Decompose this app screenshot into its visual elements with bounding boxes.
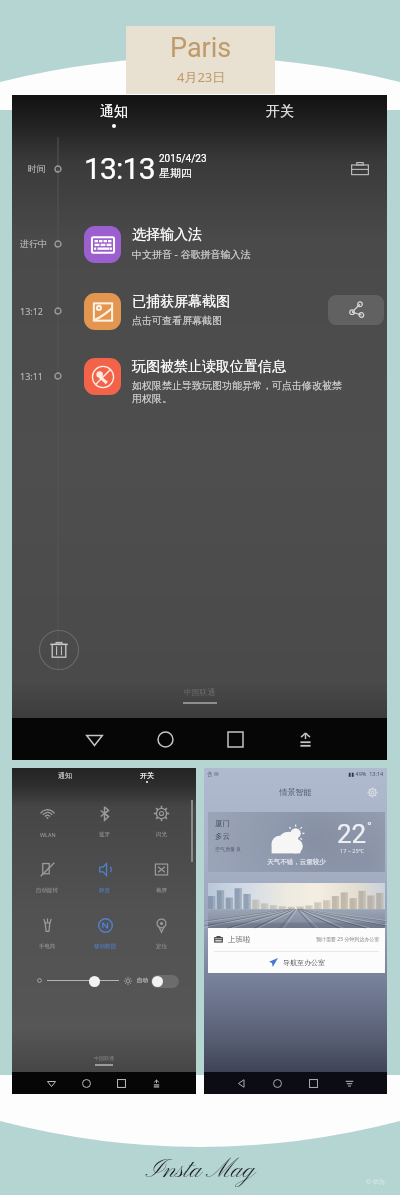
- staticText: 多云: [215, 832, 230, 841]
- button[interactable]: Menu: [331, 1072, 367, 1094]
- button[interactable]: Recents: [104, 1072, 139, 1094]
- button[interactable]: More options: [139, 1072, 174, 1094]
- button[interactable]: Recents: [295, 1072, 331, 1094]
- staticText: 通知: [100, 103, 128, 121]
- staticText: 含 ✉: [207, 770, 219, 778]
- button[interactable]: Back: [34, 1072, 69, 1094]
- staticText: 中文拼音 - 谷歌拼音输入法: [132, 247, 251, 261]
- staticText: 如权限禁止导致玩图功能异常，可点击修改被禁 用权限。: [132, 379, 342, 405]
- button[interactable]: 上班啦: [214, 928, 380, 951]
- staticText: 13:13: [84, 151, 155, 186]
- button[interactable]: 通知: [40, 771, 90, 787]
- button[interactable]: Back: [59, 718, 130, 760]
- button[interactable]: Back: [224, 1072, 259, 1094]
- staticText: 自动: [137, 977, 148, 984]
- staticText: 13:12: [20, 305, 54, 317]
- staticText: 空气质量 良: [215, 846, 242, 853]
- staticText: 通知: [58, 771, 72, 780]
- button[interactable]: 移动数据: [76, 917, 133, 969]
- staticText: 开关: [266, 103, 294, 121]
- staticText: 已捕获屏幕截图: [132, 293, 230, 311]
- staticText: 静音: [99, 887, 110, 894]
- button[interactable]: Settings: [367, 787, 378, 798]
- staticText: 进行中: [20, 238, 54, 249]
- staticText: 玩图被禁止读取位置信息: [132, 358, 286, 376]
- staticText: °: [367, 819, 372, 834]
- staticText: Insta Mag: [0, 1154, 400, 1188]
- staticText: 13:11: [20, 370, 54, 382]
- button[interactable]: Clear all notifications: [39, 630, 79, 670]
- button[interactable]: 截屏: [133, 861, 190, 913]
- staticText: 自动旋转: [36, 887, 58, 894]
- button[interactable]: WLAN: [18, 805, 76, 857]
- button[interactable]: 13:11: [12, 356, 387, 418]
- staticText: 开关: [140, 771, 154, 780]
- staticText: 移动数据: [94, 943, 116, 950]
- button[interactable]: 开关: [122, 771, 172, 789]
- button[interactable]: Work mode: [350, 159, 370, 179]
- staticText: 天气不错，云量较少: [208, 858, 385, 866]
- staticText: © 华为: [366, 1178, 385, 1186]
- staticText: ▮▮ 49% 13:14: [348, 770, 384, 777]
- staticText: 星期四: [159, 166, 192, 180]
- staticText: WLAN: [40, 831, 56, 838]
- button[interactable]: Recents: [200, 718, 270, 760]
- button[interactable]: 静音: [76, 861, 133, 913]
- button[interactable]: 蓝牙: [76, 805, 133, 857]
- button[interactable]: Share: [328, 295, 384, 325]
- staticText: Paris: [170, 32, 232, 64]
- button[interactable]: 开关: [248, 103, 312, 133]
- button[interactable]: Home: [130, 718, 200, 760]
- button[interactable]: 手电筒: [18, 917, 76, 969]
- staticText: 蓝牙: [99, 831, 110, 838]
- button[interactable]: 厦门: [208, 812, 385, 872]
- button[interactable]: 通知: [82, 103, 146, 133]
- staticText: 手电筒: [39, 943, 56, 950]
- staticText: 时间: [28, 163, 46, 174]
- staticText: 22: [337, 819, 367, 849]
- button[interactable]: Home: [259, 1072, 295, 1094]
- staticText: 中国联通: [12, 1055, 196, 1061]
- button[interactable]: Home: [69, 1072, 104, 1094]
- button[interactable]: 13:12: [12, 291, 387, 353]
- staticText: 厦门: [215, 819, 230, 828]
- staticText: 截屏: [156, 887, 167, 894]
- staticText: 上班啦: [228, 935, 251, 944]
- staticText: 17 ~ 25℃: [340, 847, 365, 854]
- staticText: 情景智能: [204, 787, 387, 797]
- staticText: 定位: [156, 943, 167, 950]
- button[interactable]: Auto brightness: [151, 975, 179, 988]
- staticText: 2015/4/23: [159, 153, 207, 165]
- staticText: 点击可查看屏幕截图: [132, 314, 222, 327]
- staticText: 导航至办公室: [283, 958, 325, 967]
- staticText: 中国联通: [12, 687, 387, 697]
- staticText: 4月23日: [177, 68, 226, 86]
- button[interactable]: 闪光: [133, 805, 190, 857]
- button[interactable]: 进行中: [12, 224, 387, 286]
- staticText: 选择输入法: [132, 226, 202, 244]
- button[interactable]: 定位: [133, 917, 190, 969]
- button[interactable]: 自动旋转: [18, 861, 76, 913]
- staticText: 预计需要 25 分钟到达办公室: [316, 936, 380, 943]
- button[interactable]: More options: [270, 718, 340, 760]
- button[interactable]: 导航至办公室: [208, 952, 385, 973]
- staticText: 闪光: [156, 831, 167, 838]
